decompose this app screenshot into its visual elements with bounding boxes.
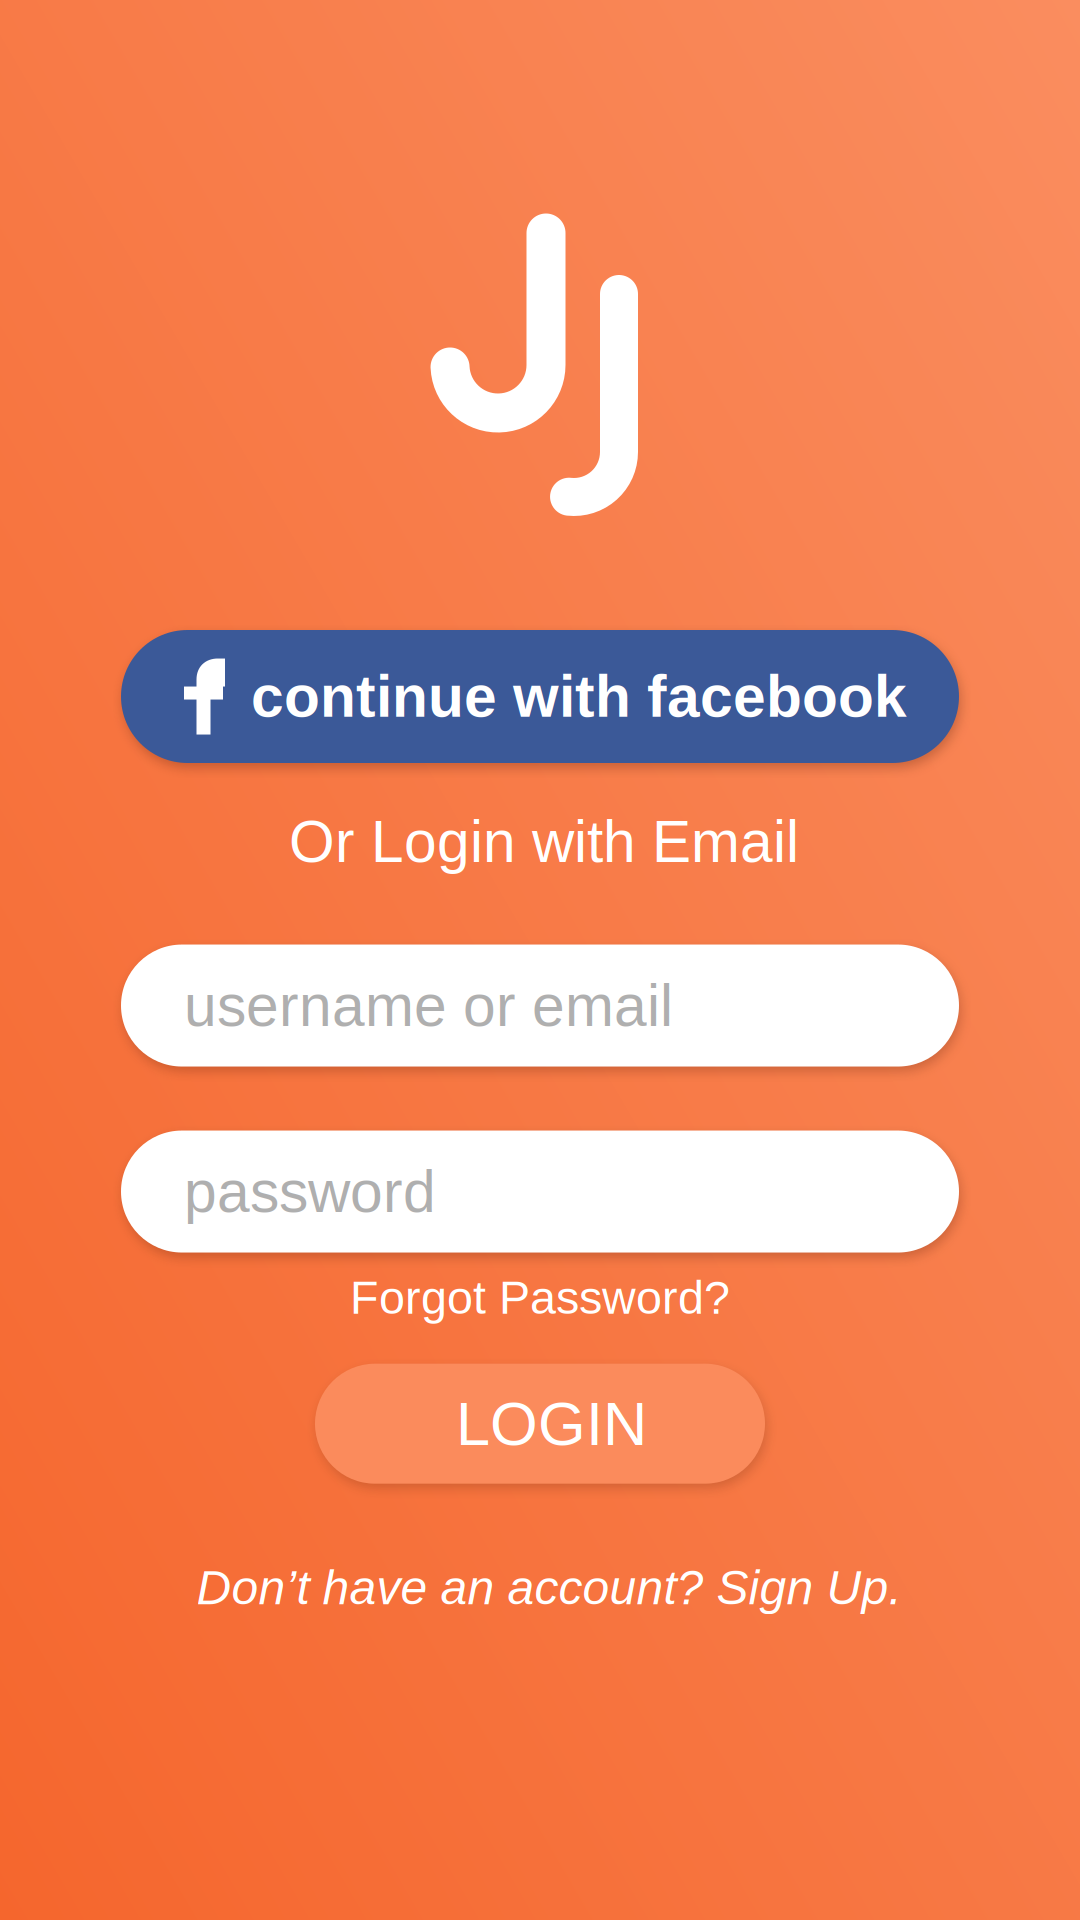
button[interactable]: username or email xyxy=(121,944,959,1066)
button[interactable]: Don’t have an account? Sign Up. xyxy=(162,1555,917,1620)
staticText: password xyxy=(184,1159,436,1224)
staticText: Forgot Password? xyxy=(350,1271,730,1324)
button[interactable]: Forgot Password? xyxy=(332,1267,748,1328)
staticText: continue with facebook xyxy=(251,664,907,729)
staticText: Or Login with Email xyxy=(289,809,799,874)
staticText: Don’t have an account? Sign Up. xyxy=(196,1561,901,1614)
button[interactable]: continue with facebook xyxy=(121,630,959,763)
button[interactable]: password xyxy=(121,1130,959,1252)
staticText: username or email xyxy=(184,973,673,1038)
staticText: LOGIN xyxy=(456,1389,647,1458)
button[interactable]: LOGIN xyxy=(315,1364,765,1484)
